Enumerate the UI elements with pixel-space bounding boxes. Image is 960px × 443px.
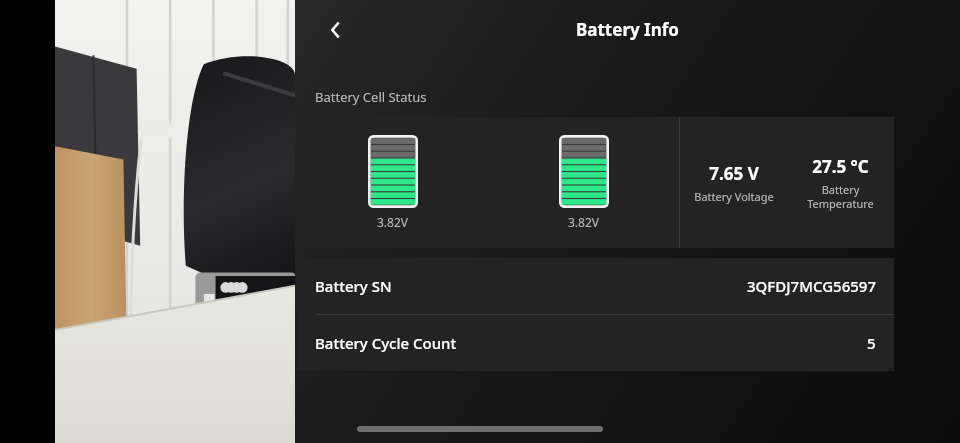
staticText: 3.82V: [377, 214, 409, 230]
staticText: 3.82V: [568, 214, 600, 230]
staticText: Battery Info: [576, 18, 679, 41]
staticText: 5: [867, 333, 876, 353]
staticText: Battery Cycle Count: [315, 333, 457, 353]
staticText: 3QFDJ7MCG56597: [747, 276, 876, 296]
button[interactable]: Back: [319, 13, 353, 47]
staticText: 7.65 V: [709, 162, 759, 185]
button[interactable]: Battery SN: [297, 258, 894, 314]
staticText: Battery Cell Status: [315, 88, 427, 106]
staticText: Battery Voltage: [694, 189, 774, 204]
staticText: 27.5 °C: [812, 155, 869, 178]
staticText: Battery Temperature: [807, 182, 874, 211]
button[interactable]: Battery Cycle Count: [297, 314, 894, 371]
staticText: Battery SN: [315, 276, 392, 296]
